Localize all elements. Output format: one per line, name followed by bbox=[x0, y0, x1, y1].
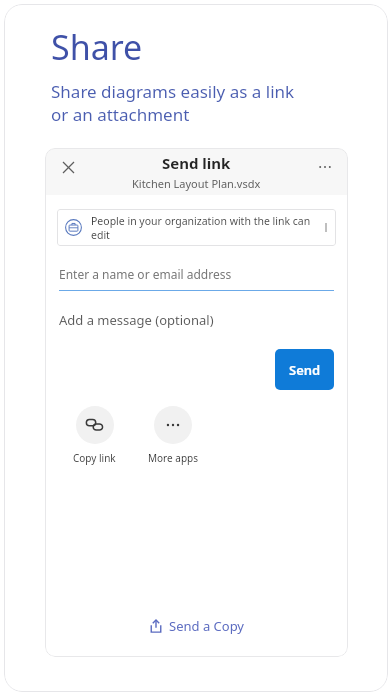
button[interactable]: Send a Copy bbox=[45, 609, 348, 643]
button[interactable]: Send bbox=[275, 349, 334, 390]
staticText: Kitchen Layout Plan.vsdx bbox=[132, 176, 261, 191]
staticText: More apps bbox=[148, 451, 198, 465]
button[interactable]: People in your organization with the lin… bbox=[57, 209, 336, 246]
button[interactable]: More options bbox=[310, 152, 340, 182]
button[interactable]: More apps bbox=[146, 406, 200, 465]
button[interactable]: Close bbox=[53, 152, 83, 182]
staticText: People in your organization with the lin… bbox=[91, 214, 326, 242]
staticText: Share bbox=[51, 24, 143, 70]
staticText: Send link bbox=[162, 153, 231, 173]
staticText: Send bbox=[289, 361, 321, 379]
button[interactable]: Copy link bbox=[71, 406, 118, 465]
staticText: Enter a name or email address bbox=[59, 266, 232, 282]
staticText: Send a Copy bbox=[169, 617, 244, 635]
staticText: Add a message (optional) bbox=[59, 311, 214, 329]
staticText: Share diagrams easily as a link or an at… bbox=[51, 80, 295, 126]
staticText: Copy link bbox=[73, 451, 116, 465]
